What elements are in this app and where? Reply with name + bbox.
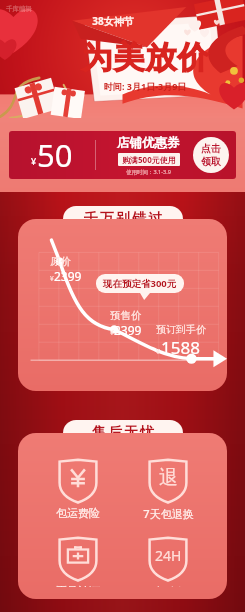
staticText: 预订到手价 <box>156 323 206 336</box>
staticText: 点击 <box>201 142 221 155</box>
staticText: 7天包退换 <box>143 506 194 521</box>
staticText: 正品认证 <box>56 584 100 587</box>
staticText: ¥ <box>156 347 161 357</box>
button[interactable]: 包运费险 <box>36 457 120 520</box>
staticText: 1588 <box>161 336 200 359</box>
staticText: 38女神节 <box>78 14 148 28</box>
staticText: 24小时发货 <box>140 584 197 587</box>
staticText: 千万别错过 <box>83 210 163 228</box>
staticText: 50 <box>37 134 73 176</box>
button[interactable]: 7天包退换 <box>126 457 210 521</box>
staticText: 店铺优惠券 <box>117 135 180 151</box>
button[interactable]: 24小时发货 <box>126 535 210 587</box>
staticText: ¥ <box>31 155 37 167</box>
staticText: 2399 <box>114 322 142 338</box>
staticText: 预售价 <box>110 309 142 322</box>
staticText: ¥ <box>110 328 114 337</box>
button[interactable]: 点击 <box>193 137 229 173</box>
staticText: 24H <box>155 546 182 565</box>
staticText: ¥ <box>50 274 54 283</box>
staticText: 售后无忧 <box>91 424 155 442</box>
staticText: 2399 <box>54 268 82 284</box>
staticText: 为美放价 <box>81 38 209 77</box>
staticText: 领取 <box>201 155 221 168</box>
staticText: 千库编辑 <box>6 5 32 13</box>
staticText: 购满500元使用 <box>122 154 176 165</box>
staticText: 包运费险 <box>56 506 100 520</box>
staticText: 现在预定省300元 <box>103 277 177 290</box>
staticText: 原价 <box>50 255 71 268</box>
button[interactable]: 正品认证 <box>36 535 120 587</box>
staticText: 退 <box>159 466 178 490</box>
staticText: 使用时间：3.1-3.9 <box>126 168 171 176</box>
button[interactable]: ¥ <box>9 131 236 179</box>
staticText: 时间: 3月1日-3月9日 <box>104 80 187 92</box>
